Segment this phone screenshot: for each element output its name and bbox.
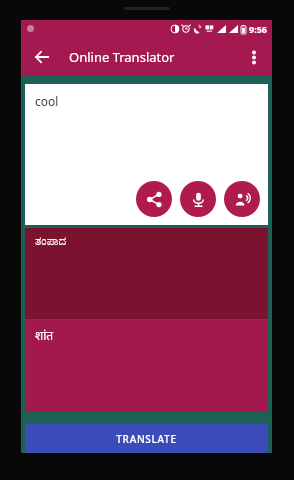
staticText: Online Translator — [69, 48, 175, 66]
button[interactable]: Back — [27, 42, 57, 72]
button[interactable]: More options — [240, 43, 268, 71]
staticText: 9:56 — [249, 23, 267, 35]
staticText: शांत — [35, 327, 54, 343]
button[interactable]: ತಂಪಾದ — [25, 228, 268, 319]
button[interactable]: cool — [25, 84, 268, 225]
staticText: ತಂಪಾದ — [35, 235, 67, 247]
button[interactable]: शांत — [25, 320, 268, 412]
staticText: TRANSLATE — [116, 432, 177, 446]
button[interactable]: Voice input — [180, 181, 216, 217]
button[interactable]: TRANSLATE — [25, 424, 268, 453]
staticText: cool — [35, 93, 59, 109]
button[interactable]: Share — [136, 181, 172, 217]
button[interactable]: Speak translation — [224, 181, 260, 217]
